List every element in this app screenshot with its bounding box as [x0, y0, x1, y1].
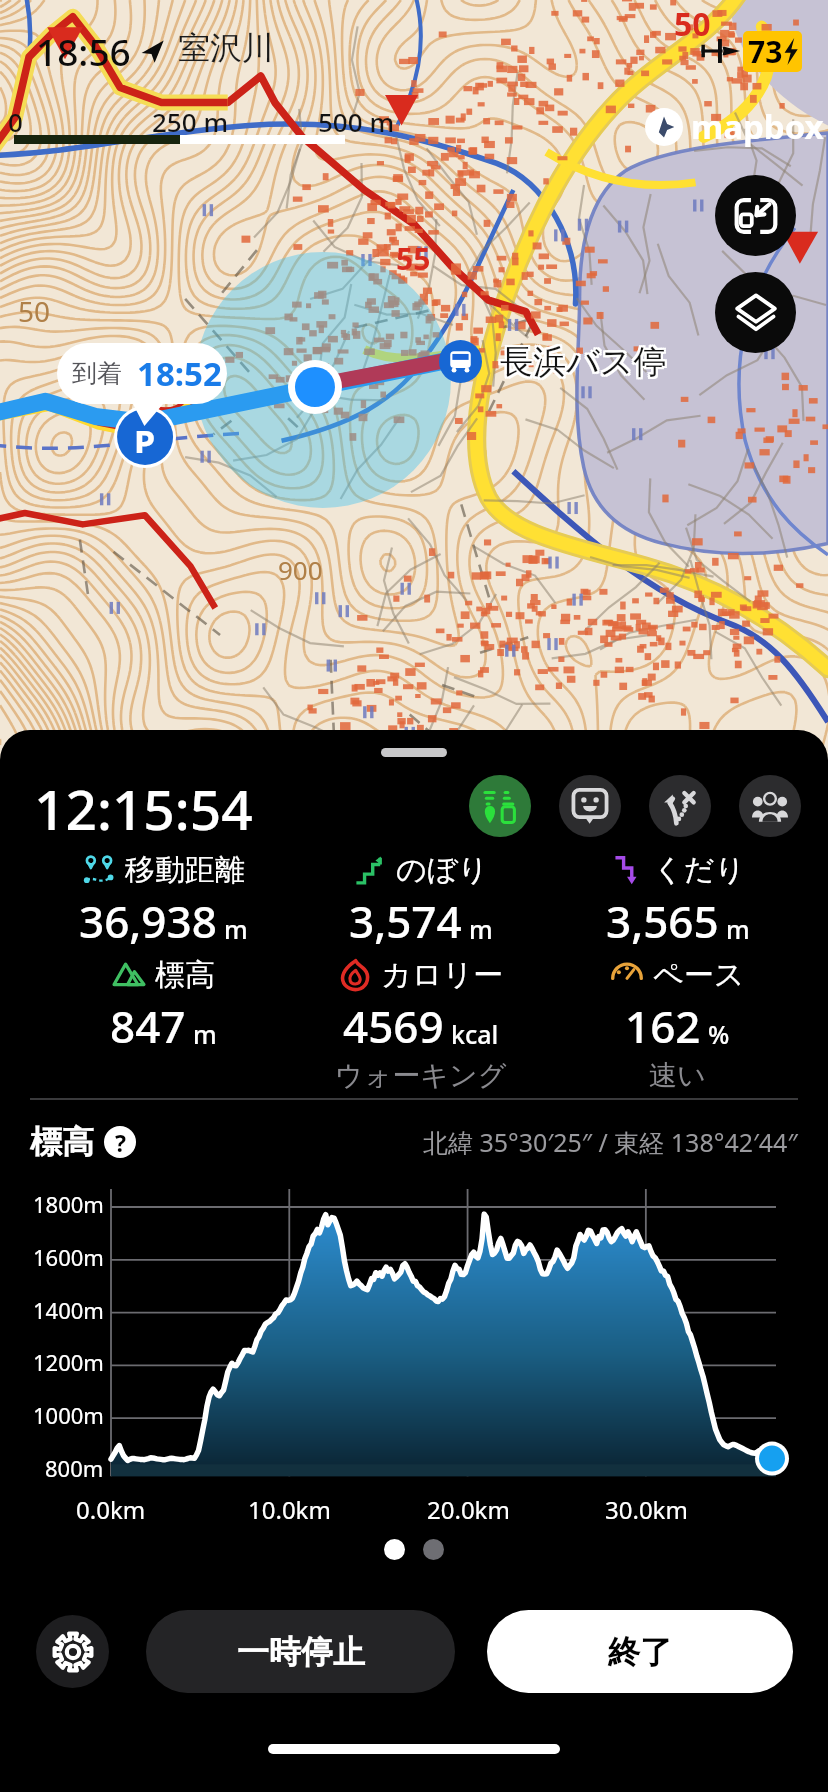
staticText: 長浜バス停 [500, 343, 667, 385]
staticText: 長浜バス停 [502, 341, 669, 383]
staticText: 800m [45, 1453, 104, 1483]
staticText: 30.0km [605, 1493, 688, 1526]
staticText: m [224, 912, 248, 946]
staticText: 長浜バス停 [498, 343, 665, 385]
staticText: のぼり [396, 851, 489, 889]
staticText: 終了 [608, 1632, 672, 1672]
staticText: 12:15:54 [34, 771, 253, 846]
staticText: ? [115, 1127, 126, 1158]
staticText: 18:56 [36, 26, 131, 76]
staticText: m [726, 912, 750, 946]
staticText: 到着 [72, 358, 122, 389]
staticText: 900 [278, 552, 323, 587]
staticText: 標高 [155, 956, 215, 994]
staticText: 0 [8, 104, 23, 139]
staticText: 標高 [30, 1122, 94, 1162]
staticText: カロリー [381, 956, 504, 994]
staticText: 250 m [152, 104, 228, 139]
staticText: 移動距離 [125, 851, 245, 889]
button[interactable]: Nagahama bus stop [439, 340, 482, 383]
staticText: 3,565 [606, 891, 719, 951]
button[interactable]: 一時停止 [146, 1610, 455, 1693]
staticText: % [708, 1017, 730, 1051]
button[interactable]: Members [739, 775, 801, 837]
button[interactable]: Comments [559, 775, 621, 837]
button[interactable]: 到着 [57, 343, 227, 404]
button[interactable]: Help [104, 1126, 136, 1158]
staticText: 18:52 [137, 351, 222, 396]
staticText: 50 [18, 292, 51, 330]
staticText: 室沢川 [178, 28, 274, 68]
staticText: 162 [625, 996, 701, 1056]
staticText: 50 [674, 2, 711, 46]
staticText: 500 m [318, 104, 394, 139]
staticText: 0.0km [76, 1493, 146, 1526]
staticText: ペース [653, 956, 745, 994]
staticText: P [134, 419, 156, 453]
button[interactable]: Map layers [715, 272, 796, 353]
staticText: 847 [110, 996, 186, 1056]
staticText: 20.0km [427, 1493, 510, 1526]
staticText: mapbox [691, 104, 824, 149]
button[interactable]: Off route [649, 775, 711, 837]
button[interactable]: Settings [36, 1615, 109, 1688]
staticText: 3,574 [349, 891, 462, 951]
staticText: 長浜バス停 [498, 339, 665, 381]
staticText: 73 [748, 31, 783, 72]
button[interactable]: Navigation [469, 775, 531, 837]
staticText: 北緯 35°30′25″ / 東経 138°42′44″ [423, 1125, 798, 1159]
staticText: 1200m [33, 1347, 104, 1377]
button[interactable]: 終了 [487, 1610, 793, 1693]
staticText: 速い [649, 1058, 706, 1093]
staticText: 36,938 [79, 891, 217, 951]
staticText: 長浜バス停 [498, 341, 665, 383]
staticText: 長浜バス停 [502, 339, 669, 381]
staticText: 1600m [33, 1242, 104, 1272]
button[interactable]: Fit route to screen [715, 175, 796, 256]
staticText: 1000m [33, 1400, 104, 1430]
staticText: 10.0km [248, 1493, 331, 1526]
staticText: m [193, 1017, 217, 1051]
staticText: m [469, 912, 493, 946]
staticText: くだり [653, 851, 746, 889]
staticText: kcal [451, 1017, 499, 1051]
staticText: 一時停止 [237, 1632, 365, 1672]
staticText: 1400m [33, 1295, 104, 1325]
staticText: 1800m [33, 1189, 104, 1219]
staticText: ウォーキング [335, 1058, 507, 1093]
staticText: 55 [396, 238, 431, 279]
staticText: 長浜バス停 [500, 339, 667, 381]
staticText: 4569 [343, 996, 444, 1056]
staticText: 長浜バス停 [500, 341, 667, 383]
staticText: 長浜バス停 [502, 343, 669, 385]
